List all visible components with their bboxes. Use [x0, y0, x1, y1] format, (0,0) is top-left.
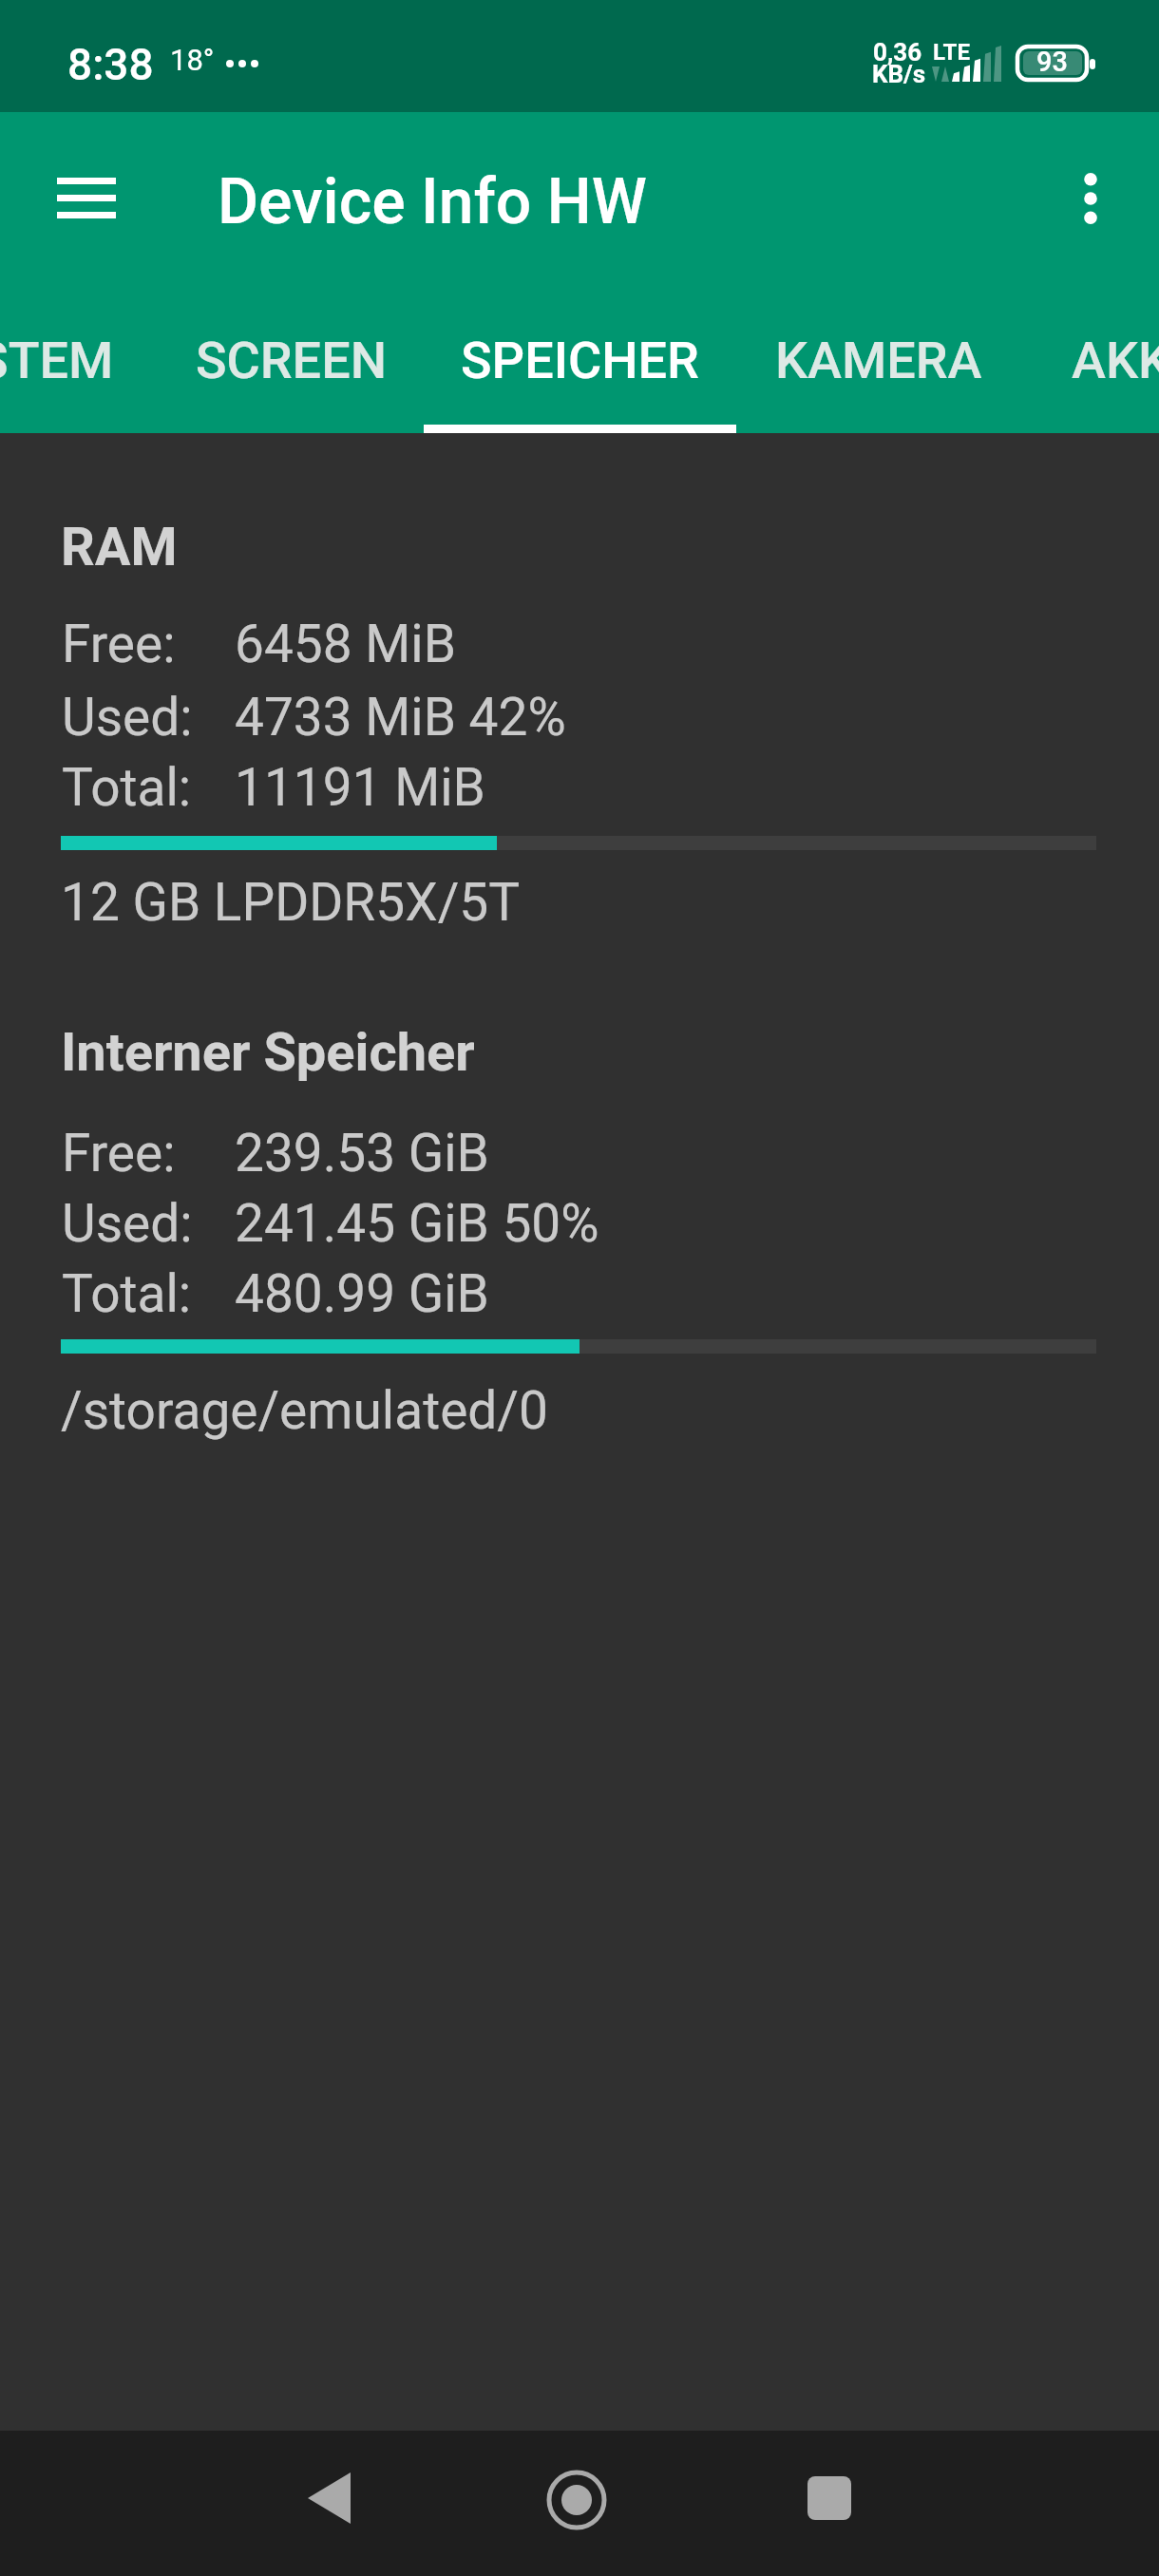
staticText: 4733 MiB 42%: [235, 687, 566, 748]
staticText: SCREEN: [196, 331, 388, 390]
staticText: RAM: [61, 516, 178, 578]
button[interactable]: More options: [1046, 154, 1135, 243]
staticText: Total:: [62, 1263, 192, 1324]
button[interactable]: Recent apps: [752, 2440, 906, 2556]
staticText: Free:: [62, 614, 176, 674]
staticText: Interner Speicher: [61, 1021, 475, 1084]
button[interactable]: SYSTEM: [0, 323, 160, 433]
staticText: KB/s: [872, 60, 926, 88]
staticText: KAMERA: [775, 331, 982, 390]
button[interactable]: SCREEN: [160, 323, 424, 433]
staticText: 239.53 GiB: [235, 1123, 489, 1184]
button[interactable]: Home: [500, 2442, 654, 2558]
staticText: Used:: [62, 1193, 193, 1254]
staticText: 12 GB LPDDR5X/5T: [61, 872, 521, 933]
staticText: 0,36: [873, 38, 922, 66]
staticText: 93: [1036, 46, 1068, 78]
staticText: Used:: [62, 687, 193, 748]
staticText: Free:: [62, 1123, 176, 1184]
staticText: LTE: [933, 39, 970, 66]
button[interactable]: AKKU: [1021, 323, 1159, 433]
button[interactable]: KAMERA: [736, 323, 1021, 433]
staticText: 480.99 GiB: [235, 1263, 489, 1324]
staticText: 11191 MiB: [235, 757, 485, 818]
button[interactable]: Back: [252, 2440, 406, 2556]
staticText: 241.45 GiB 50%: [235, 1193, 599, 1254]
staticText: Total:: [62, 757, 192, 818]
staticText: SPEICHER: [461, 331, 699, 390]
staticText: AKKU: [1072, 331, 1159, 390]
button[interactable]: SPEICHER: [424, 323, 736, 433]
staticText: 6458 MiB: [235, 614, 456, 674]
button[interactable]: Open navigation menu: [42, 153, 131, 242]
staticText: SYSTEM: [0, 331, 114, 390]
staticText: /storage/emulated/0: [61, 1380, 548, 1441]
staticText: Device Info HW: [218, 165, 647, 238]
staticText: 8:38: [67, 39, 154, 90]
staticText: 18°: [170, 43, 215, 77]
